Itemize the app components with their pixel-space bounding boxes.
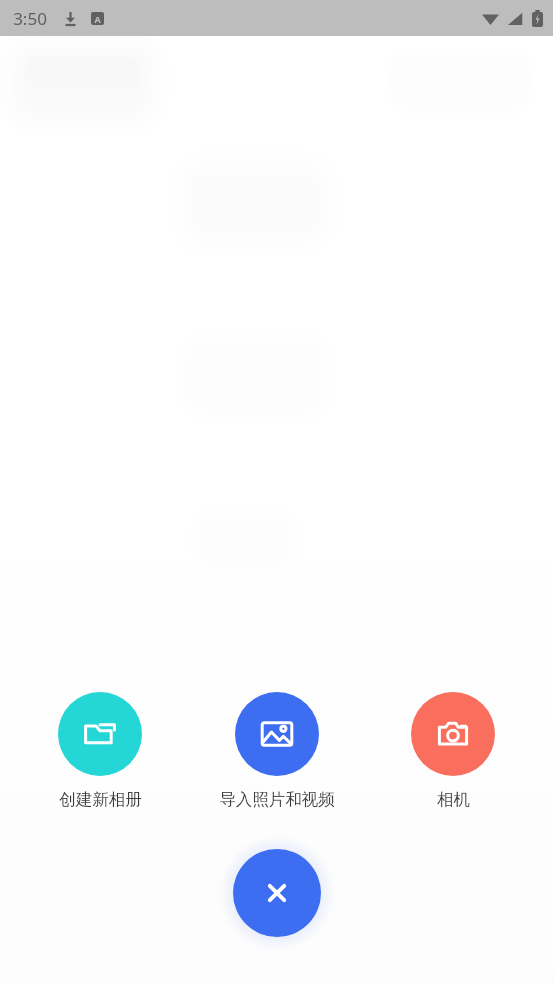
button[interactable]: 创建新相册 xyxy=(56,692,144,810)
button[interactable]: 关闭 xyxy=(233,849,321,937)
staticText: 相机 xyxy=(437,789,470,810)
staticText: 3:50 xyxy=(13,7,47,30)
button[interactable]: 相机 xyxy=(409,692,497,810)
staticText: 导入照片和视频 xyxy=(219,789,335,810)
staticText: 创建新相册 xyxy=(59,789,142,810)
button[interactable]: 导入照片和视频 xyxy=(217,692,337,810)
staticText: A xyxy=(94,13,101,25)
